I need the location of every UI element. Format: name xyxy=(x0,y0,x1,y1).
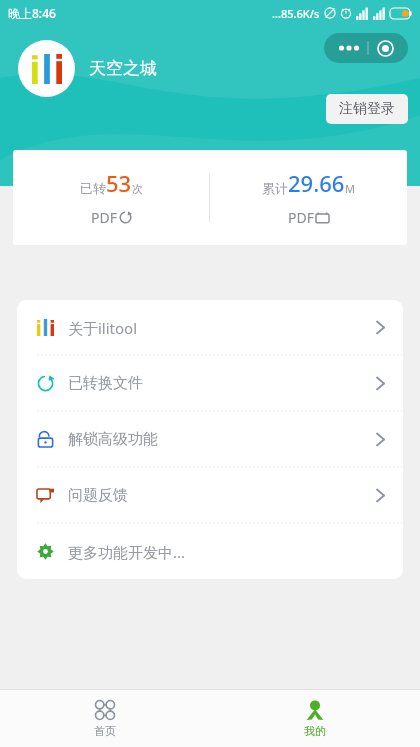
button[interactable]: 累计 xyxy=(210,150,407,245)
button[interactable]: 我的 xyxy=(210,690,420,747)
button[interactable]: 更多功能开发中... xyxy=(17,524,403,579)
staticText: 注销登录 xyxy=(339,100,395,118)
staticText: 已转 xyxy=(80,180,106,196)
button[interactable]: 首页 xyxy=(0,690,210,747)
button[interactable]: Mini program menu xyxy=(324,33,408,63)
staticText: 晚上8:46 xyxy=(8,5,56,21)
staticText: PDF xyxy=(288,208,314,227)
staticText: ...85.6K/s xyxy=(272,6,320,21)
staticText: 53 xyxy=(106,168,132,198)
staticText: 次 xyxy=(132,182,143,196)
staticText: 问题反馈 xyxy=(68,486,128,505)
button[interactable]: 注销登录 xyxy=(326,94,408,124)
staticText: 关于ilitool xyxy=(68,318,138,338)
staticText: 累计 xyxy=(262,180,288,196)
button[interactable]: Avatar xyxy=(18,40,75,97)
staticText: 更多功能开发中... xyxy=(68,542,186,562)
staticText: PDF xyxy=(91,208,117,227)
button[interactable]: 问题反馈 xyxy=(17,468,403,523)
staticText: 我的 xyxy=(304,724,326,738)
staticText: 首页 xyxy=(94,724,116,738)
staticText: 已转换文件 xyxy=(68,374,143,393)
staticText: 天空之城 xyxy=(89,58,157,79)
button[interactable]: 解锁高级功能 xyxy=(17,412,403,467)
button[interactable]: 已转换文件 xyxy=(17,356,403,411)
staticText: 29.66 xyxy=(288,168,345,198)
button[interactable]: 已转 xyxy=(13,150,209,245)
staticText: M xyxy=(345,181,355,196)
staticText: 解锁高级功能 xyxy=(68,430,158,449)
button[interactable]: 关于ilitool xyxy=(17,300,403,355)
